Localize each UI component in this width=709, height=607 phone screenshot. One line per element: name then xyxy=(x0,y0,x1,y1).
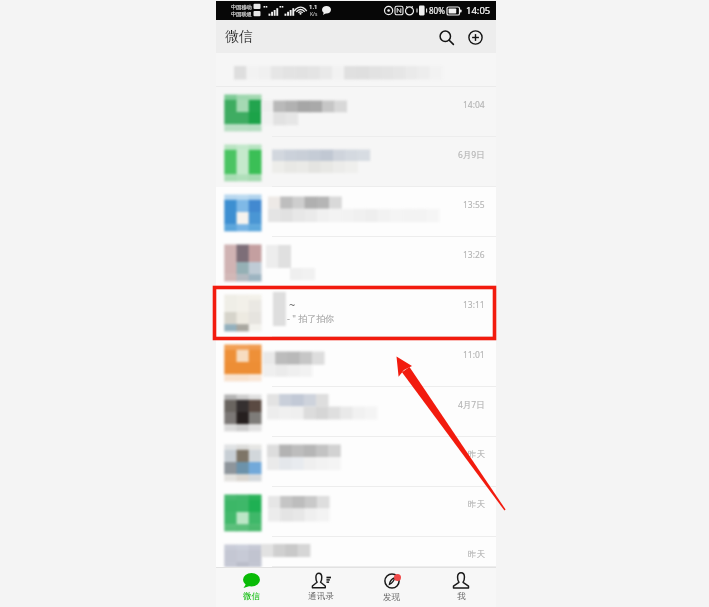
staticText: 昨天 xyxy=(468,499,485,510)
staticText: 80% xyxy=(429,5,445,16)
button[interactable]: 发现 xyxy=(356,568,426,607)
staticText: 13:55 xyxy=(463,199,485,211)
button[interactable]: 昨天 xyxy=(216,437,496,487)
staticText: 通讯录 xyxy=(308,591,334,602)
staticText: 微信 xyxy=(243,591,260,602)
button[interactable]: Search xyxy=(433,24,459,50)
staticText: 13:11 xyxy=(463,299,485,311)
staticText: ~ xyxy=(289,297,296,312)
staticText: 昨天 xyxy=(468,549,485,560)
button[interactable]: 4月7日 xyxy=(216,387,496,437)
staticText: 14:04 xyxy=(463,99,485,111)
staticText: - " 拍了拍你 xyxy=(287,312,335,324)
button[interactable]: Add xyxy=(462,24,488,50)
staticText: 我 xyxy=(457,591,466,602)
button[interactable]: 14:04 xyxy=(216,87,496,137)
staticText: 11:01 xyxy=(463,349,485,361)
staticText: 6月9日 xyxy=(458,149,485,161)
button[interactable]: 昨天 xyxy=(216,487,496,537)
staticText: 4月7日 xyxy=(458,399,485,411)
button[interactable]: 微信 xyxy=(216,568,286,607)
staticText: 中国联通 xyxy=(231,11,252,18)
button[interactable]: 13:55 xyxy=(216,187,496,237)
staticText: 13:26 xyxy=(463,249,485,261)
staticText: K/s xyxy=(310,11,318,18)
button[interactable]: 13:26 xyxy=(216,237,496,287)
button[interactable]: 6月9日 xyxy=(216,137,496,187)
button[interactable]: 昨天 xyxy=(216,537,496,567)
staticText: 14:05 xyxy=(466,4,491,17)
staticText: 1.1 xyxy=(309,3,318,11)
button[interactable]: 11:01 xyxy=(216,337,496,387)
button[interactable]: 通讯录 xyxy=(286,568,356,607)
staticText: 昨天 xyxy=(468,449,485,460)
button[interactable]: ~ xyxy=(216,287,496,337)
button[interactable]: 我 xyxy=(426,568,496,607)
staticText: 微信 xyxy=(225,28,253,46)
staticText: 发现 xyxy=(383,592,400,603)
staticText: 中国移动 xyxy=(231,4,252,11)
